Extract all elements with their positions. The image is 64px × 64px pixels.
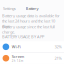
- button[interactable]: Wi-Fi: [0, 41, 64, 52]
- staticText: BATTERY USAGE BY APP: [2, 34, 44, 39]
- staticText: Wi-Fi: [12, 44, 21, 49]
- staticText: 32%: [54, 44, 61, 49]
- button[interactable]: Settings: [0, 6, 19, 11]
- staticText: Battery usage data is available for the …: [2, 13, 60, 29]
- staticText: 2h 14m: [12, 59, 23, 63]
- staticText: Screen: [12, 54, 24, 59]
- staticText: Settings: [3, 6, 16, 11]
- staticText: Battery usage since the last full charge…: [2, 24, 55, 35]
- button[interactable]: Screen: [0, 53, 64, 64]
- staticText: 21%: [54, 56, 61, 61]
- staticText: Battery: [25, 6, 38, 11]
